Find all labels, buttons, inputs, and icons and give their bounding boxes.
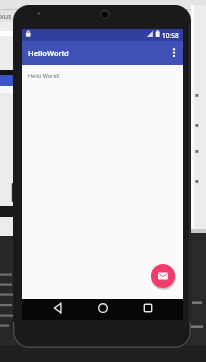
staticText: Hello World! [28, 72, 60, 79]
staticText: 10:58 [162, 31, 179, 40]
button[interactable] [138, 299, 159, 320]
button[interactable] [151, 264, 175, 288]
button[interactable] [48, 299, 69, 320]
staticText: HelloWorld [28, 48, 69, 58]
button[interactable] [93, 299, 114, 320]
staticText: xus 4 [0, 12, 14, 22]
button[interactable] [166, 42, 182, 63]
